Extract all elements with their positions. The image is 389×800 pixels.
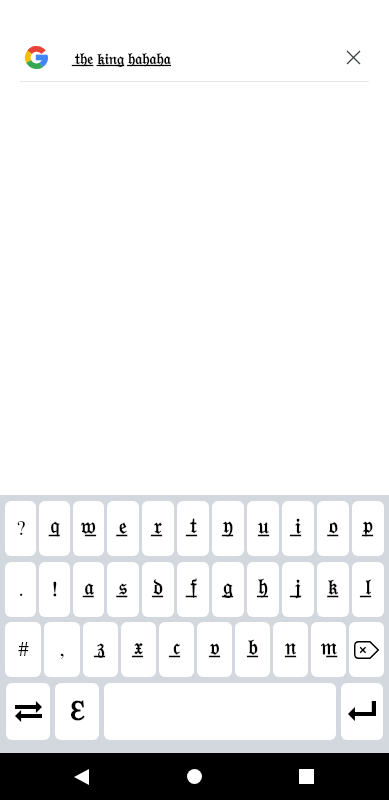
staticText: 𝔮̲ — [50, 516, 60, 537]
button[interactable]: , — [44, 622, 80, 677]
button[interactable]: 𝔩̲ — [352, 562, 384, 617]
button[interactable]: ! — [39, 562, 70, 617]
button[interactable]: 𝔨̲ — [317, 562, 349, 617]
staticText: 𝔲̲ — [258, 516, 269, 537]
staticText: 𝔠̲ — [173, 637, 180, 658]
button[interactable]: 𝔴̲ — [73, 501, 104, 556]
button[interactable]: Switch keyboard — [6, 683, 50, 740]
button[interactable]: 𝔟̲ — [235, 622, 270, 677]
staticText: 𝔩̲ — [365, 577, 371, 598]
button[interactable]: 𝔠̲ — [159, 622, 194, 677]
button[interactable]: 𝔥̲ — [247, 562, 279, 617]
button[interactable]: Home — [170, 753, 218, 800]
staticText: ! — [51, 579, 58, 600]
staticText: 𝔟̲ — [248, 637, 258, 658]
button[interactable]: 𝔱̲ — [177, 501, 209, 556]
staticText: 𝔥̲ — [258, 577, 268, 598]
button[interactable]: Backspace — [349, 622, 384, 677]
button[interactable]: 𝔦̲ — [282, 501, 314, 556]
staticText: 𝔤̲ — [223, 577, 233, 598]
staticText: 𝔢̲ — [119, 516, 127, 537]
staticText: . — [18, 579, 24, 600]
staticText: 𝔞̲ — [84, 577, 94, 598]
button[interactable]: 𝔵̲ — [121, 622, 156, 677]
button[interactable]: 𝔭̲ — [352, 501, 384, 556]
staticText: 𝔡̲ — [153, 577, 163, 598]
button[interactable]: 𝔰̲ — [107, 562, 139, 617]
staticText: # — [18, 639, 29, 660]
button[interactable]: # — [5, 622, 41, 677]
button[interactable]: Clear — [336, 40, 370, 74]
staticText: 𝔨̲ — [328, 577, 338, 598]
button[interactable]: 𝔬̲ — [317, 501, 349, 556]
staticText: 𝔶̲ — [223, 516, 233, 537]
staticText: 𝔫̲ — [285, 637, 296, 658]
button[interactable]: 𝔮̲ — [39, 501, 70, 556]
button[interactable]: 𝔞̲ — [73, 562, 104, 617]
staticText: 𝔴̲ — [81, 516, 96, 537]
button[interactable]: ? — [5, 501, 36, 556]
staticText: 𝔱̲ — [190, 516, 197, 537]
button[interactable]: 𝔷̲ — [83, 622, 118, 677]
button[interactable]: 𝔤̲ — [212, 562, 244, 617]
button[interactable]: . — [5, 562, 36, 617]
staticText: Ɛ — [70, 698, 85, 725]
staticText: 𝔣̲ — [190, 577, 197, 598]
button[interactable]: Recents — [282, 753, 330, 800]
staticText: ? — [16, 518, 26, 539]
button[interactable]: 𝔪̲ — [311, 622, 346, 677]
button[interactable]: 𝔣̲ — [177, 562, 209, 617]
staticText: 𝔱̲𝔥̲𝔢̲ 𝔨̲𝔦̲𝔫̲𝔤̲ 𝔥̲𝔞̲𝔥̲𝔞̲𝔥̲𝔞̲ — [75, 51, 171, 67]
staticText: 𝔬̲ — [329, 516, 338, 537]
button[interactable]: 𝔶̲ — [212, 501, 244, 556]
button[interactable]: 𝔯̲ — [142, 501, 174, 556]
staticText: 𝔷̲ — [97, 637, 105, 658]
button[interactable]: Enter — [341, 683, 383, 740]
button[interactable]: 𝔫̲ — [273, 622, 308, 677]
staticText: 𝔳̲ — [210, 637, 220, 658]
button[interactable]: Ɛ — [55, 683, 99, 740]
staticText: 𝔧̲ — [295, 577, 301, 598]
staticText: 𝔪̲ — [321, 637, 337, 658]
staticText: , — [59, 639, 65, 660]
button[interactable]: 𝔧̲ — [282, 562, 314, 617]
staticText: 𝔯̲ — [154, 516, 162, 537]
staticText: 𝔭̲ — [363, 516, 373, 537]
staticText: 𝔰̲ — [119, 577, 127, 598]
button[interactable]: Back — [57, 753, 105, 800]
staticText: 𝔵̲ — [134, 637, 143, 658]
button[interactable]: 𝔡̲ — [142, 562, 174, 617]
button[interactable]: 𝔲̲ — [247, 501, 279, 556]
button[interactable]: 𝔳̲ — [197, 622, 232, 677]
button[interactable]: 𝔢̲ — [107, 501, 139, 556]
staticText: 𝔦̲ — [295, 516, 301, 537]
